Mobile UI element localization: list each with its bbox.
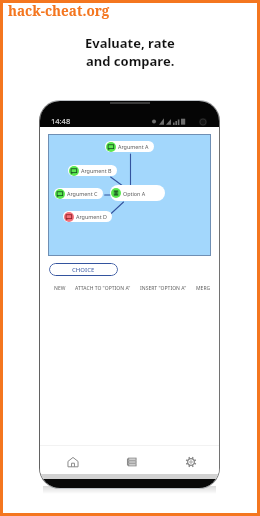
staticText: NEW	[54, 285, 66, 292]
button[interactable]: Argument A	[106, 141, 149, 152]
staticText: and compare.	[86, 52, 175, 70]
staticText: ATTACH TO "OPTION A"	[75, 285, 131, 292]
button[interactable]: Library	[120, 450, 143, 474]
staticText: hack-cheat.org	[8, 2, 110, 20]
button[interactable]: Settings	[179, 450, 202, 474]
button[interactable]: ATTACH TO "OPTION A"	[75, 285, 131, 292]
button[interactable]: MERG	[196, 285, 211, 292]
button[interactable]: INSERT "OPTION A"	[140, 285, 187, 292]
staticText: Option A	[123, 190, 146, 197]
button[interactable]: Argument B	[69, 165, 112, 176]
staticText: Argument C	[67, 190, 98, 197]
button[interactable]: Home	[61, 450, 84, 474]
staticText: Evaluate, rate	[85, 34, 175, 52]
staticText: Argument D	[76, 213, 107, 220]
staticText: Argument B	[81, 167, 112, 174]
button[interactable]: CHOICE	[49, 263, 118, 276]
button[interactable]: Argument D	[64, 211, 107, 222]
button[interactable]: NEW	[54, 285, 66, 292]
button[interactable]: Argument C	[55, 188, 98, 199]
staticText: INSERT "OPTION A"	[140, 285, 187, 292]
staticText: 14:48	[51, 116, 71, 126]
button[interactable]: Option A	[111, 185, 146, 201]
staticText: MERG	[196, 285, 211, 292]
staticText: CHOICE	[72, 266, 95, 274]
staticText: Argument A	[118, 143, 149, 150]
